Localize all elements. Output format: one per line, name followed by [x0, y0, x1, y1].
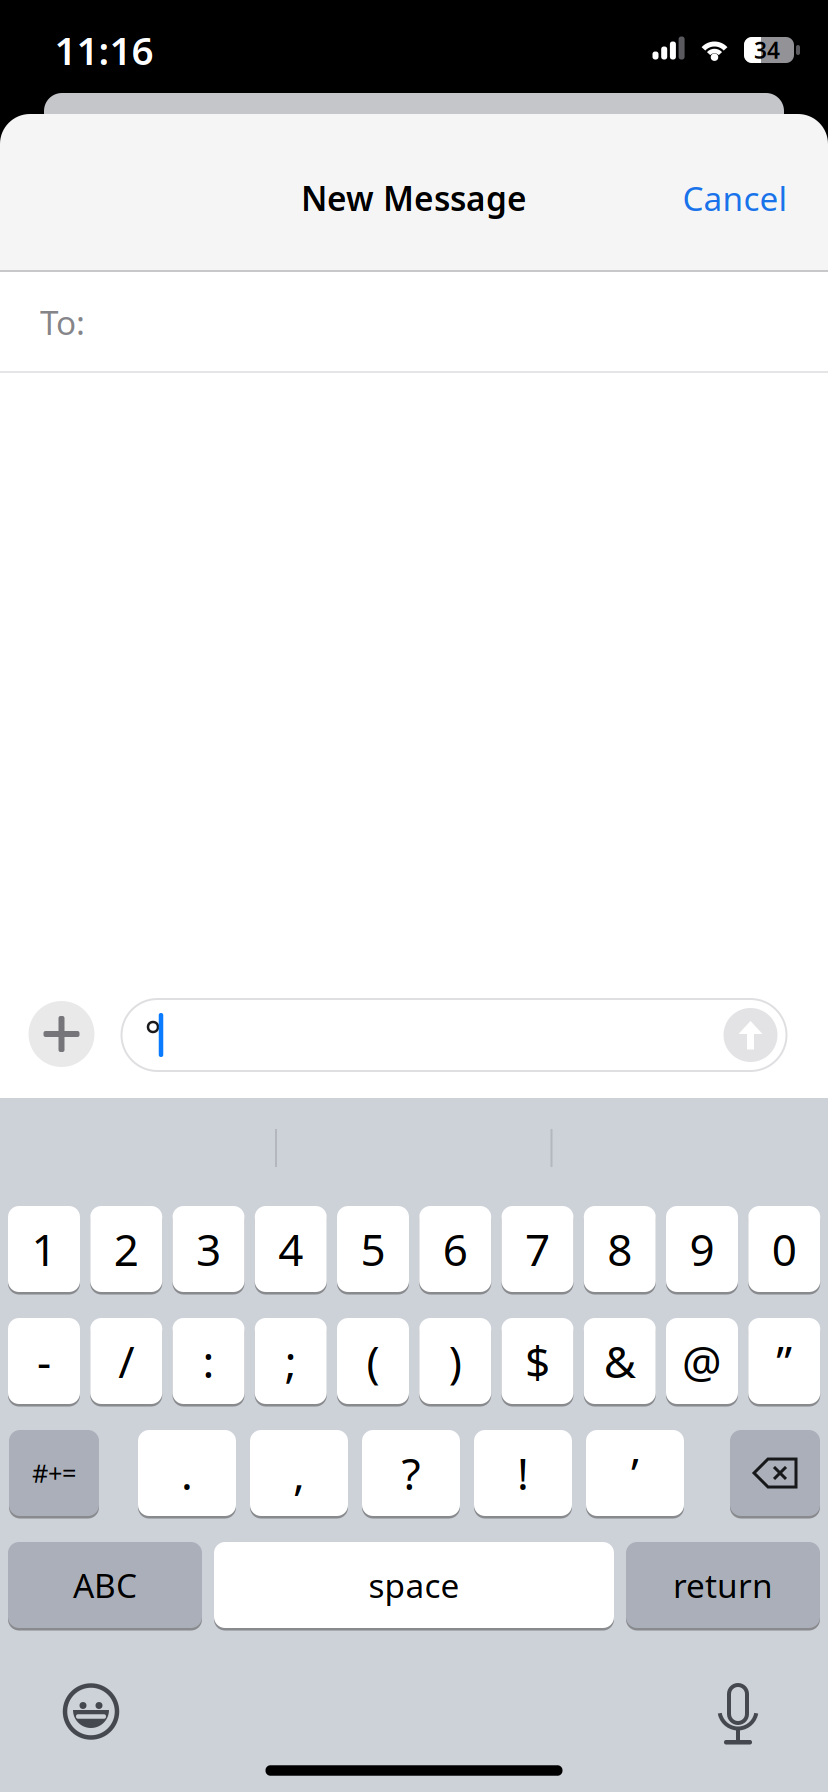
staticText: @	[682, 1332, 722, 1390]
button[interactable]: Cancel	[682, 176, 787, 220]
staticText: space	[368, 1563, 459, 1607]
button[interactable]: :	[172, 1316, 244, 1405]
staticText: 1	[31, 1220, 56, 1278]
button[interactable]: #+=	[9, 1428, 99, 1517]
staticText: ’	[631, 1444, 639, 1502]
button[interactable]: ”	[748, 1316, 820, 1405]
staticText: 7	[525, 1220, 550, 1278]
staticText: 6	[443, 1220, 468, 1278]
button[interactable]: space	[214, 1540, 614, 1629]
staticText: $	[525, 1332, 550, 1390]
button[interactable]: Add attachment	[28, 1001, 94, 1067]
staticText: 9	[689, 1220, 714, 1278]
button[interactable]: 8	[584, 1204, 656, 1293]
button[interactable]: /	[90, 1316, 162, 1405]
staticText: New Message	[301, 176, 527, 220]
staticText: Cancel	[682, 176, 787, 220]
button[interactable]: To:	[0, 272, 828, 371]
staticText: 5	[360, 1220, 385, 1278]
staticText: ;	[285, 1332, 297, 1390]
staticText: ABC	[73, 1563, 137, 1607]
button[interactable]: ’	[586, 1428, 684, 1517]
button[interactable]: Send	[723, 1008, 777, 1062]
button[interactable]: 7	[501, 1204, 573, 1293]
button[interactable]: return	[626, 1540, 820, 1629]
staticText: 34	[754, 35, 780, 65]
button[interactable]: $	[501, 1316, 573, 1405]
staticText: ?	[401, 1444, 420, 1502]
staticText: 8	[607, 1220, 632, 1278]
button[interactable]: Delete	[730, 1428, 820, 1517]
staticText: )	[449, 1332, 462, 1390]
staticText: 2	[114, 1220, 139, 1278]
button[interactable]: Message text field	[120, 998, 787, 1072]
staticText: .	[181, 1444, 193, 1502]
staticText: ”	[776, 1332, 792, 1390]
button[interactable]: ,	[250, 1428, 348, 1517]
button[interactable]: ;	[255, 1316, 327, 1405]
staticText: return	[673, 1563, 773, 1607]
button[interactable]: 3	[172, 1204, 244, 1293]
staticText: (	[366, 1332, 379, 1390]
staticText: 4	[278, 1220, 303, 1278]
button[interactable]: 1	[8, 1204, 80, 1293]
button[interactable]: )	[419, 1316, 491, 1405]
button[interactable]: &	[584, 1316, 656, 1405]
staticText: 11:16	[54, 24, 153, 76]
staticText: 3	[196, 1220, 221, 1278]
staticText: #+=	[32, 1456, 76, 1490]
button[interactable]: ?	[362, 1428, 460, 1517]
staticText: To:	[40, 300, 85, 344]
button[interactable]: Dictate	[710, 1680, 766, 1740]
button[interactable]: Emoji	[63, 1683, 119, 1739]
button[interactable]: 2	[90, 1204, 162, 1293]
button[interactable]: (	[337, 1316, 409, 1405]
staticText: -	[37, 1332, 51, 1390]
button[interactable]: 9	[666, 1204, 738, 1293]
button[interactable]: -	[8, 1316, 80, 1405]
button[interactable]: 6	[419, 1204, 491, 1293]
button[interactable]: @	[666, 1316, 738, 1405]
button[interactable]: !	[474, 1428, 572, 1517]
button[interactable]: 4	[255, 1204, 327, 1293]
staticText: 0	[772, 1220, 797, 1278]
button[interactable]: 0	[748, 1204, 820, 1293]
button[interactable]: ABC	[8, 1540, 202, 1629]
staticText: ,	[293, 1444, 305, 1502]
button[interactable]: 5	[337, 1204, 409, 1293]
staticText: :	[202, 1332, 214, 1390]
staticText: !	[517, 1444, 529, 1502]
button[interactable]: .	[138, 1428, 236, 1517]
staticText: &	[604, 1332, 636, 1390]
staticText: /	[118, 1332, 134, 1390]
